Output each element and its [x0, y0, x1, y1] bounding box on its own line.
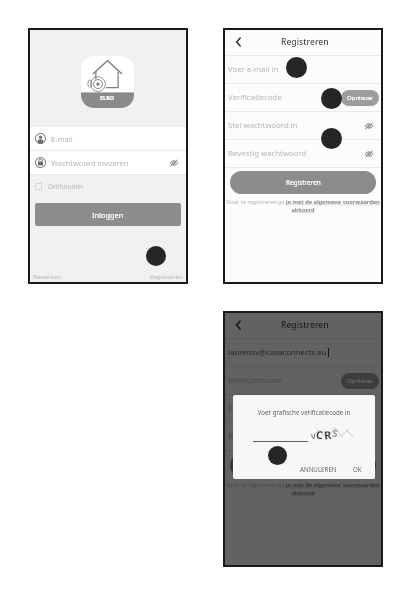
- staticText: Registreren: [286, 461, 321, 470]
- staticText: Stel wachtwoord in: [228, 403, 298, 414]
- button[interactable]: Bevestig wachtwoord: [223, 423, 383, 450]
- staticText: Stel wachtwoord in: [228, 120, 298, 131]
- staticText: Bevestig wachtwoord: [228, 148, 307, 159]
- button[interactable]: Bevestig wachtwoord: [223, 140, 383, 167]
- button[interactable]: Back: [230, 317, 246, 333]
- button[interactable]: ANNULEREN: [297, 462, 340, 476]
- button[interactable]: E-mail: [28, 127, 188, 150]
- staticText: Registreren: [281, 319, 329, 331]
- button[interactable]: Wachtwoord invoeren: [28, 151, 188, 174]
- button[interactable]: Verificatiecode: [223, 367, 383, 394]
- staticText: Inloggen: [92, 210, 124, 220]
- staticText: Registreren: [286, 178, 321, 187]
- staticText: laurensv@casaconnects.eu: [228, 347, 327, 358]
- staticText: Verificatiecode: [228, 375, 282, 386]
- staticText: Opnieuw: [347, 94, 373, 102]
- staticText: OK: [353, 465, 362, 473]
- staticText: ANNULEREN: [300, 465, 337, 473]
- button[interactable]: Registreren: [230, 171, 376, 194]
- staticText: ELRO: [100, 94, 115, 101]
- button[interactable]: Bewerken: [33, 273, 62, 281]
- button[interactable]: Stel wachtwoord in: [223, 112, 383, 139]
- staticText: Onthouden: [48, 182, 84, 191]
- button[interactable]: Back: [230, 34, 246, 50]
- staticText: R: [323, 427, 333, 442]
- staticText: v: [310, 429, 317, 441]
- staticText: Bevestig wachtwoord: [228, 431, 307, 442]
- staticText: C: [315, 427, 325, 442]
- button[interactable]: OK: [350, 462, 365, 476]
- staticText: Wachtwoord invoeren: [51, 158, 129, 168]
- button[interactable]: Door te registreren ga je met de algemen…: [226, 198, 380, 214]
- staticText: E-mail: [51, 134, 73, 144]
- staticText: Voer grafische verificatiecode in: [233, 408, 375, 416]
- button[interactable]: Opnieuw: [341, 373, 379, 389]
- staticText: Bewerken: [33, 273, 62, 281]
- staticText: Verificatiecode: [228, 92, 282, 103]
- button[interactable]: Registreren: [150, 273, 183, 281]
- button[interactable]: Onthouden: [28, 175, 188, 198]
- staticText: Registreren: [281, 36, 329, 48]
- staticText: S: [331, 426, 339, 440]
- button[interactable]: Registreren: [230, 454, 376, 477]
- button[interactable]: Verificatiecode: [223, 84, 383, 111]
- staticText: Voer e-mail in: [228, 64, 279, 75]
- staticText: Opnieuw: [347, 377, 373, 385]
- button[interactable]: laurensv@casaconnects.eu: [223, 339, 383, 366]
- button[interactable]: Stel wachtwoord in: [223, 395, 383, 422]
- button[interactable]: Voer e-mail in: [223, 56, 383, 83]
- button[interactable]: Inloggen: [35, 203, 181, 226]
- button[interactable]: Opnieuw: [341, 90, 379, 106]
- staticText: Registreren: [150, 273, 183, 281]
- button[interactable]: Door te registreren ga je met de algemen…: [226, 481, 380, 497]
